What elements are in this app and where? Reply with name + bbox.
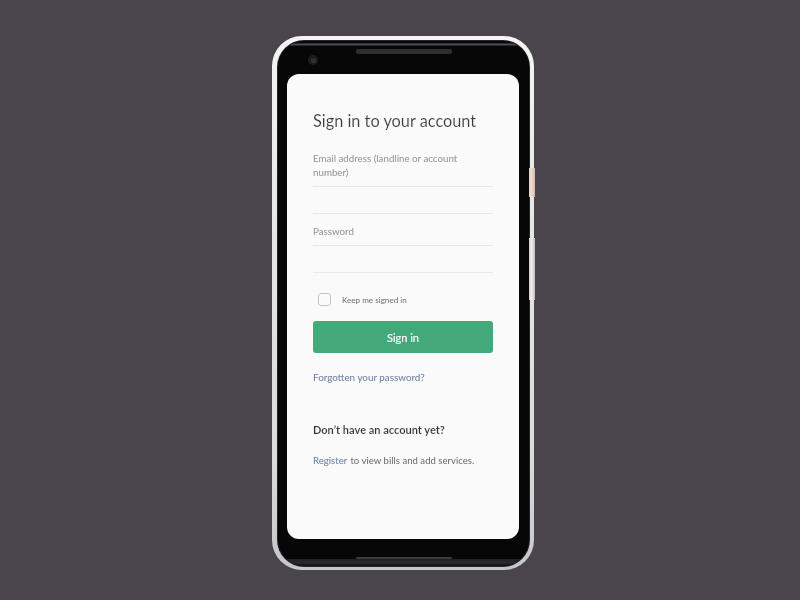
staticText: Keep me signed in [342,295,407,305]
button[interactable]: Keep me signed in [313,293,407,306]
button[interactable] [313,186,493,214]
button[interactable]: Sign in [313,321,493,353]
staticText: Email address (landline or account numbe… [313,152,493,178]
button[interactable]: Forgotten your password? [313,371,425,383]
staticText: Forgotten your password? [313,371,425,383]
staticText: Sign in [387,331,420,344]
button[interactable] [313,245,493,273]
staticText: Register [313,455,348,467]
staticText: Sign in to your account [313,111,477,131]
staticText: Password [313,225,354,237]
staticText: to view bills and add services. [348,455,475,467]
button[interactable]: Register [313,455,348,467]
staticText: Don’t have an account yet? [313,423,445,436]
